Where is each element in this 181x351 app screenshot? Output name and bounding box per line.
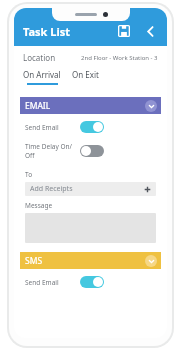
staticText: Task List (23, 24, 70, 39)
staticText: 2nd Floor - Work Station - 3 (81, 54, 158, 62)
button[interactable]: Toggle off (80, 145, 104, 157)
staticText: On Arrival (23, 69, 61, 80)
staticText: Send Email (25, 123, 59, 132)
button[interactable]: On Arrival (23, 69, 61, 85)
staticText: Time Delay On/Off (25, 142, 72, 160)
button[interactable]: Toggle on (80, 121, 104, 133)
staticText: Add Receipts (30, 184, 73, 194)
staticText: To (25, 170, 33, 179)
button[interactable]: Save (114, 21, 134, 41)
staticText: Send Email (25, 278, 59, 287)
staticText: On Exit (72, 69, 99, 80)
staticText: SMS (25, 255, 43, 267)
button[interactable]: Add Receipts (25, 182, 156, 196)
staticText: EMAIL (25, 100, 51, 112)
staticText: Message (25, 201, 53, 210)
button[interactable]: EMAIL (20, 97, 161, 114)
button[interactable]: On Exit (72, 69, 99, 80)
staticText: Location (23, 52, 56, 63)
button[interactable]: Back (140, 21, 160, 41)
button[interactable]: SMS (20, 252, 161, 269)
button[interactable]: Toggle on (80, 276, 104, 288)
